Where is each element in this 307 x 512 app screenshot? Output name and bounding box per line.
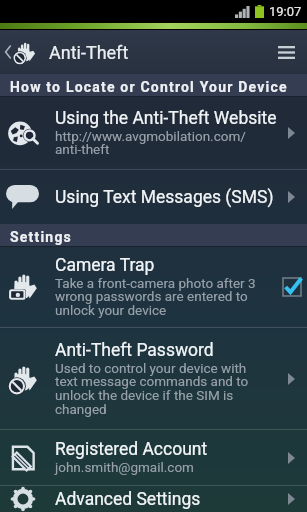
button[interactable]: Navigate up xyxy=(0,30,42,74)
staticText: Using Text Messages (SMS) xyxy=(55,187,274,208)
button[interactable]: Camera Trap xyxy=(0,247,307,327)
staticText: 19:07 xyxy=(269,4,302,19)
staticText: Anti-Theft xyxy=(49,42,129,63)
button[interactable]: More options xyxy=(265,30,307,74)
staticText: Advanced Settings xyxy=(55,489,201,510)
button[interactable]: Anti-Theft Password xyxy=(0,328,307,429)
staticText: Camera Trap xyxy=(55,255,155,276)
staticText: How to Locate or Control Your Device xyxy=(10,79,288,95)
staticText: Settings xyxy=(10,229,72,245)
staticText: Used to control your device with text me… xyxy=(55,360,249,417)
staticText: Registered Account xyxy=(55,439,208,460)
staticText: Using the Anti-Theft Website xyxy=(55,108,276,129)
button[interactable]: Registered Account xyxy=(0,430,307,485)
staticText: Take a front-camera photo after 3 wrong … xyxy=(55,275,256,318)
button[interactable]: Using Text Messages (SMS) xyxy=(0,170,307,224)
staticText: john.smith@gmail.com xyxy=(55,459,194,475)
staticText: Anti-Theft Password xyxy=(55,340,214,361)
button[interactable]: Advanced Settings xyxy=(0,486,307,512)
button[interactable]: Using the Anti-Theft Website xyxy=(0,97,307,169)
staticText: http://www.avgmobilation.com/ anti-theft xyxy=(55,128,246,157)
